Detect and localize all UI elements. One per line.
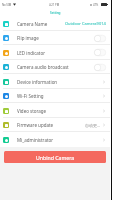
button[interactable]: LED indicator — [94, 49, 106, 56]
staticText: No SIM — [2, 3, 12, 7]
button[interactable]: Flip image — [0, 31, 110, 45]
staticText: 自动更... — [85, 123, 101, 128]
button[interactable]: Device information — [0, 74, 110, 89]
staticText: Video storage — [17, 108, 47, 114]
button[interactable]: Flip image — [94, 35, 106, 42]
staticText: Outdoor Camera9014 — [65, 21, 106, 26]
staticText: LED indicator — [17, 50, 46, 56]
button[interactable]: Camera audio broadcast — [0, 60, 110, 74]
staticText: 4:21 PM — [49, 3, 60, 7]
button[interactable]: Mi_administrator — [0, 132, 110, 147]
button[interactable]: Video storage — [0, 103, 110, 118]
staticText: Flip image — [17, 35, 39, 41]
button[interactable]: Firmware update — [0, 118, 110, 132]
button[interactable]: Camera Name — [0, 16, 110, 31]
staticText: Device information — [17, 79, 58, 85]
staticText: Camera Name — [17, 21, 48, 27]
staticText: Wi-Fi Setting — [17, 93, 44, 99]
staticText: Firmware update — [17, 122, 54, 128]
button[interactable]: LED indicator — [0, 45, 110, 60]
button[interactable]: Wi-Fi Setting — [0, 89, 110, 103]
button[interactable]: Camera audio broadcast — [94, 64, 106, 71]
staticText: Setting — [50, 11, 61, 15]
staticText: Mi_administrator — [17, 137, 54, 143]
button[interactable]: Unbind Camera — [4, 151, 106, 163]
staticText: Unbind Camera — [36, 154, 75, 161]
staticText: 47% — [93, 3, 99, 7]
staticText: Camera audio broadcast — [17, 64, 69, 70]
